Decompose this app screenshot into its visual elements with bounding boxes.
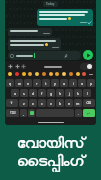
button[interactable] — [8, 28, 52, 36]
staticText: l — [87, 91, 88, 96]
button[interactable]: q — [6, 79, 14, 87]
button[interactable] — [8, 51, 81, 60]
button[interactable]: r — [33, 79, 41, 87]
button[interactable]: e — [24, 79, 32, 87]
staticText: q — [9, 81, 12, 86]
staticText: v — [50, 101, 52, 106]
staticText: z — [23, 101, 25, 106]
button[interactable]: Keyboard tool — [15, 64, 20, 69]
staticText: b — [59, 101, 62, 106]
staticText: ⌫ — [86, 101, 92, 105]
staticText: n — [68, 101, 71, 106]
button[interactable]: m — [74, 99, 82, 107]
button[interactable]: n — [65, 99, 73, 107]
button[interactable]: x — [29, 99, 37, 107]
staticText: x — [32, 101, 34, 106]
staticText: y — [54, 81, 56, 86]
button[interactable]: u — [60, 79, 68, 87]
button[interactable]: Keyboard tool — [21, 64, 26, 69]
staticText: ?123 — [10, 111, 16, 115]
button[interactable]: g — [47, 89, 55, 97]
button[interactable]: i — [69, 79, 77, 87]
button[interactable]: h — [56, 89, 64, 97]
staticText: p — [90, 81, 93, 86]
button[interactable]: , — [20, 109, 27, 117]
button[interactable]: ?123 — [6, 109, 19, 117]
button[interactable] — [37, 9, 93, 26]
staticText: , — [23, 111, 24, 116]
button[interactable]: Send — [83, 50, 93, 60]
staticText: d — [32, 91, 35, 96]
button[interactable]: v — [47, 99, 55, 107]
button[interactable]: d — [29, 89, 37, 97]
staticText: j — [69, 91, 70, 96]
staticText: k — [77, 91, 79, 96]
staticText: വോയിസ് ടൈപ്പിംഗ് — [17, 136, 85, 169]
button[interactable]: ⇧ — [6, 99, 18, 107]
button[interactable]: Enter — [83, 109, 95, 117]
button[interactable]: b — [56, 99, 64, 107]
staticText: . — [78, 111, 79, 116]
staticText: h — [59, 91, 62, 96]
button[interactable] — [8, 38, 61, 50]
staticText: o — [81, 81, 84, 86]
button[interactable]: o — [78, 79, 86, 87]
button[interactable]: Voice input — [28, 109, 35, 117]
staticText: c — [41, 101, 43, 106]
button[interactable]: p — [87, 79, 95, 87]
staticText: g — [50, 91, 53, 96]
staticText: a — [14, 91, 17, 96]
button[interactable]: . — [75, 109, 82, 117]
button[interactable]: y — [51, 79, 59, 87]
button[interactable]: ⌫ — [83, 99, 95, 107]
button[interactable]: w — [15, 79, 23, 87]
button[interactable]: l — [83, 89, 91, 97]
staticText: w — [18, 81, 21, 86]
button[interactable]: a — [11, 89, 19, 97]
button[interactable]: j — [65, 89, 73, 97]
staticText: ↵ — [87, 111, 91, 116]
button[interactable]: f — [38, 89, 46, 97]
staticText: r — [36, 81, 38, 86]
staticText: i — [73, 81, 74, 86]
staticText: s — [23, 91, 25, 96]
staticText: t — [45, 81, 47, 86]
staticText: f — [41, 91, 43, 96]
button[interactable]: z — [19, 99, 28, 107]
button[interactable]: k — [74, 89, 82, 97]
button[interactable]: s — [20, 89, 28, 97]
button[interactable]: c — [38, 99, 46, 107]
button[interactable]: t — [42, 79, 50, 87]
staticText: m — [76, 101, 80, 106]
staticText: e — [27, 81, 30, 86]
button[interactable]: Toggle — [80, 63, 93, 70]
staticText: Today — [46, 2, 55, 6]
button[interactable]: Keyboard tool — [8, 64, 13, 69]
staticText: u — [63, 81, 66, 86]
staticText: ⇧ — [10, 101, 14, 105]
